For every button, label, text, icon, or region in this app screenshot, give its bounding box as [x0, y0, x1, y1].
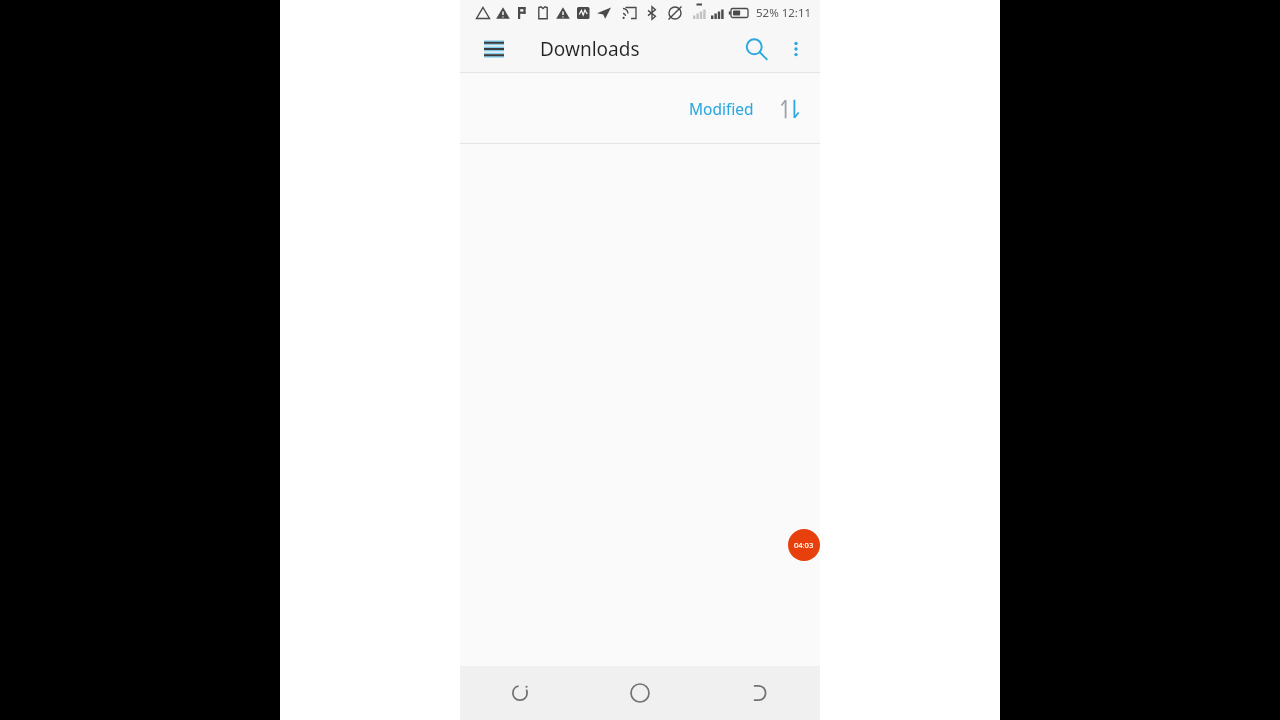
button[interactable]: Open navigation drawer — [478, 33, 510, 65]
button[interactable]: Recent apps — [460, 666, 580, 720]
button[interactable]: Toggle sort order — [774, 93, 806, 125]
button[interactable]: Search — [736, 29, 776, 69]
button[interactable]: Modified — [683, 92, 760, 125]
staticText: 52% 12:11 — [756, 5, 812, 21]
staticText: 04:03 — [794, 540, 814, 550]
staticText: Modified — [689, 98, 754, 119]
staticText: Downloads — [540, 36, 640, 62]
button[interactable]: More options — [776, 29, 816, 69]
button[interactable]: Home — [580, 666, 700, 720]
button[interactable]: Back — [700, 666, 820, 720]
button[interactable]: 04:03 — [788, 529, 820, 561]
